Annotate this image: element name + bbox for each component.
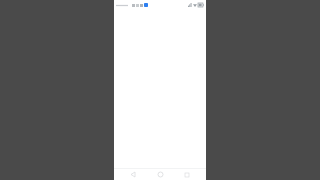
- button[interactable]: Home: [152, 169, 168, 180]
- button[interactable]: Recent apps: [179, 169, 195, 180]
- button[interactable]: Back: [125, 169, 141, 180]
